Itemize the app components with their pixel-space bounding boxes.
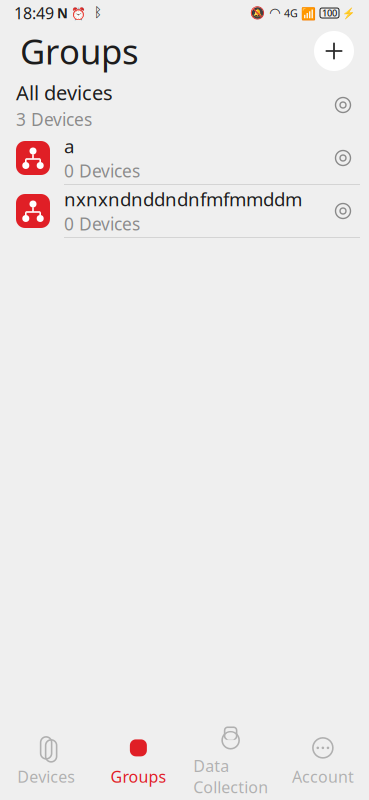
staticText: Groups (20, 28, 139, 74)
button[interactable]: All devices (0, 82, 369, 128)
staticText: Account (292, 766, 354, 787)
staticText: 0 Devices (64, 159, 140, 182)
staticText: ◠ (265, 5, 281, 20)
staticText: nxnxndnddndnfmfmmddm (64, 187, 302, 211)
button[interactable]: Devices (0, 730, 92, 792)
button[interactable]: Data Collection (184, 730, 277, 792)
button[interactable]: nxnxndnddndnfmfmmddm (0, 185, 369, 237)
staticText: ⏰ (68, 5, 86, 21)
staticText: 3 Devices (16, 108, 92, 131)
staticText: 🔕 (250, 6, 265, 20)
staticText: Devices (17, 766, 75, 787)
staticText: 100 (322, 7, 337, 19)
staticText: Groups (110, 766, 166, 787)
staticText: 0 Devices (64, 212, 140, 235)
staticText: 📶 (298, 5, 316, 21)
staticText: All devices (16, 79, 113, 106)
button[interactable]: a (0, 132, 369, 184)
staticText: a (64, 134, 74, 158)
button[interactable]: Groups (92, 730, 184, 792)
button[interactable]: Add group (312, 29, 356, 73)
staticText: 4G (281, 6, 298, 20)
staticText: Data Collection (193, 755, 268, 798)
staticText: ᛒ (86, 6, 102, 19)
staticText: 18:49 (14, 2, 54, 24)
staticText: N (54, 4, 68, 22)
staticText: ⚡ (339, 6, 355, 20)
button[interactable]: Account (277, 730, 369, 792)
